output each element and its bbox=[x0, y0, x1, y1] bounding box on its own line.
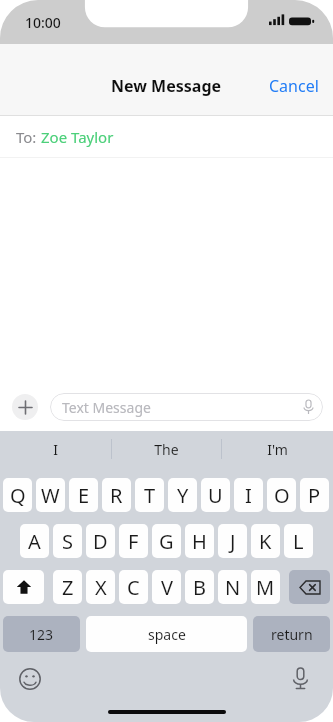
staticText: N bbox=[225, 574, 241, 601]
button[interactable]: Q bbox=[3, 478, 32, 512]
button[interactable]: G bbox=[152, 524, 181, 558]
staticText: I bbox=[53, 440, 58, 459]
button[interactable]: P bbox=[300, 478, 329, 512]
staticText: G bbox=[159, 528, 174, 555]
button[interactable]: space bbox=[86, 616, 247, 652]
button[interactable]: I bbox=[0, 431, 111, 468]
button[interactable]: 123 bbox=[3, 616, 80, 652]
button[interactable]: I'm bbox=[222, 431, 333, 468]
button[interactable]: U bbox=[201, 478, 230, 512]
button[interactable]: Emoji bbox=[15, 664, 45, 694]
button[interactable]: D bbox=[86, 524, 115, 558]
staticText: U bbox=[208, 482, 223, 509]
staticText: New Message bbox=[111, 75, 222, 97]
staticText: Z bbox=[62, 574, 74, 601]
staticText: A bbox=[28, 528, 41, 555]
button[interactable]: To: bbox=[0, 116, 333, 157]
button[interactable]: R bbox=[102, 478, 131, 512]
button[interactable]: C bbox=[119, 570, 148, 604]
button[interactable]: Add attachment bbox=[12, 394, 38, 420]
button[interactable]: T bbox=[135, 478, 164, 512]
button[interactable]: K bbox=[251, 524, 280, 558]
staticText: F bbox=[128, 528, 139, 555]
button[interactable]: F bbox=[119, 524, 148, 558]
staticText: J bbox=[230, 528, 236, 555]
button[interactable]: H bbox=[185, 524, 214, 558]
button[interactable]: S bbox=[53, 524, 82, 558]
button[interactable]: return bbox=[253, 616, 330, 652]
staticText: L bbox=[293, 528, 304, 555]
staticText: H bbox=[192, 528, 207, 555]
button[interactable]: M bbox=[251, 570, 280, 604]
button[interactable]: Shift bbox=[3, 570, 44, 604]
button[interactable]: N bbox=[218, 570, 247, 604]
button[interactable]: X bbox=[86, 570, 115, 604]
staticText: D bbox=[93, 528, 108, 555]
staticText: R bbox=[110, 482, 123, 509]
button[interactable]: W bbox=[36, 478, 65, 512]
staticText: 123 bbox=[29, 625, 54, 644]
button[interactable]: L bbox=[284, 524, 313, 558]
button[interactable]: Text Message bbox=[50, 393, 323, 421]
staticText: B bbox=[193, 574, 206, 601]
button[interactable]: Dictation bbox=[285, 664, 315, 694]
button[interactable]: E bbox=[69, 478, 98, 512]
staticText: Cancel bbox=[269, 75, 319, 97]
staticText: W bbox=[41, 482, 60, 509]
button[interactable]: B bbox=[185, 570, 214, 604]
staticText: I'm bbox=[267, 440, 288, 459]
staticText: K bbox=[259, 528, 272, 555]
staticText: M bbox=[256, 574, 275, 601]
staticText: T bbox=[144, 482, 156, 509]
staticText: Zoe Taylor bbox=[41, 127, 114, 147]
staticText: Q bbox=[10, 482, 26, 509]
button[interactable]: V bbox=[152, 570, 181, 604]
staticText: Y bbox=[177, 482, 189, 509]
button[interactable]: Z bbox=[53, 570, 82, 604]
staticText: P bbox=[308, 482, 321, 509]
staticText: The bbox=[154, 440, 179, 459]
button[interactable]: Backspace bbox=[289, 570, 330, 604]
button[interactable]: I bbox=[234, 478, 263, 512]
button[interactable]: The bbox=[111, 431, 222, 468]
staticText: S bbox=[62, 528, 73, 555]
button[interactable]: A bbox=[20, 524, 49, 558]
staticText: 10:00 bbox=[25, 13, 61, 32]
staticText: To: bbox=[16, 127, 41, 147]
staticText: I bbox=[245, 482, 252, 509]
staticText: space bbox=[148, 625, 186, 644]
staticText: C bbox=[127, 574, 140, 601]
button[interactable]: Y bbox=[168, 478, 197, 512]
staticText: V bbox=[161, 574, 173, 601]
staticText: X bbox=[95, 574, 107, 601]
button[interactable]: Cancel bbox=[255, 69, 333, 103]
staticText: E bbox=[78, 482, 90, 509]
staticText: O bbox=[274, 482, 290, 509]
button[interactable]: O bbox=[267, 478, 296, 512]
button[interactable]: J bbox=[218, 524, 247, 558]
staticText: Text Message bbox=[62, 398, 151, 417]
staticText: return bbox=[271, 625, 313, 644]
